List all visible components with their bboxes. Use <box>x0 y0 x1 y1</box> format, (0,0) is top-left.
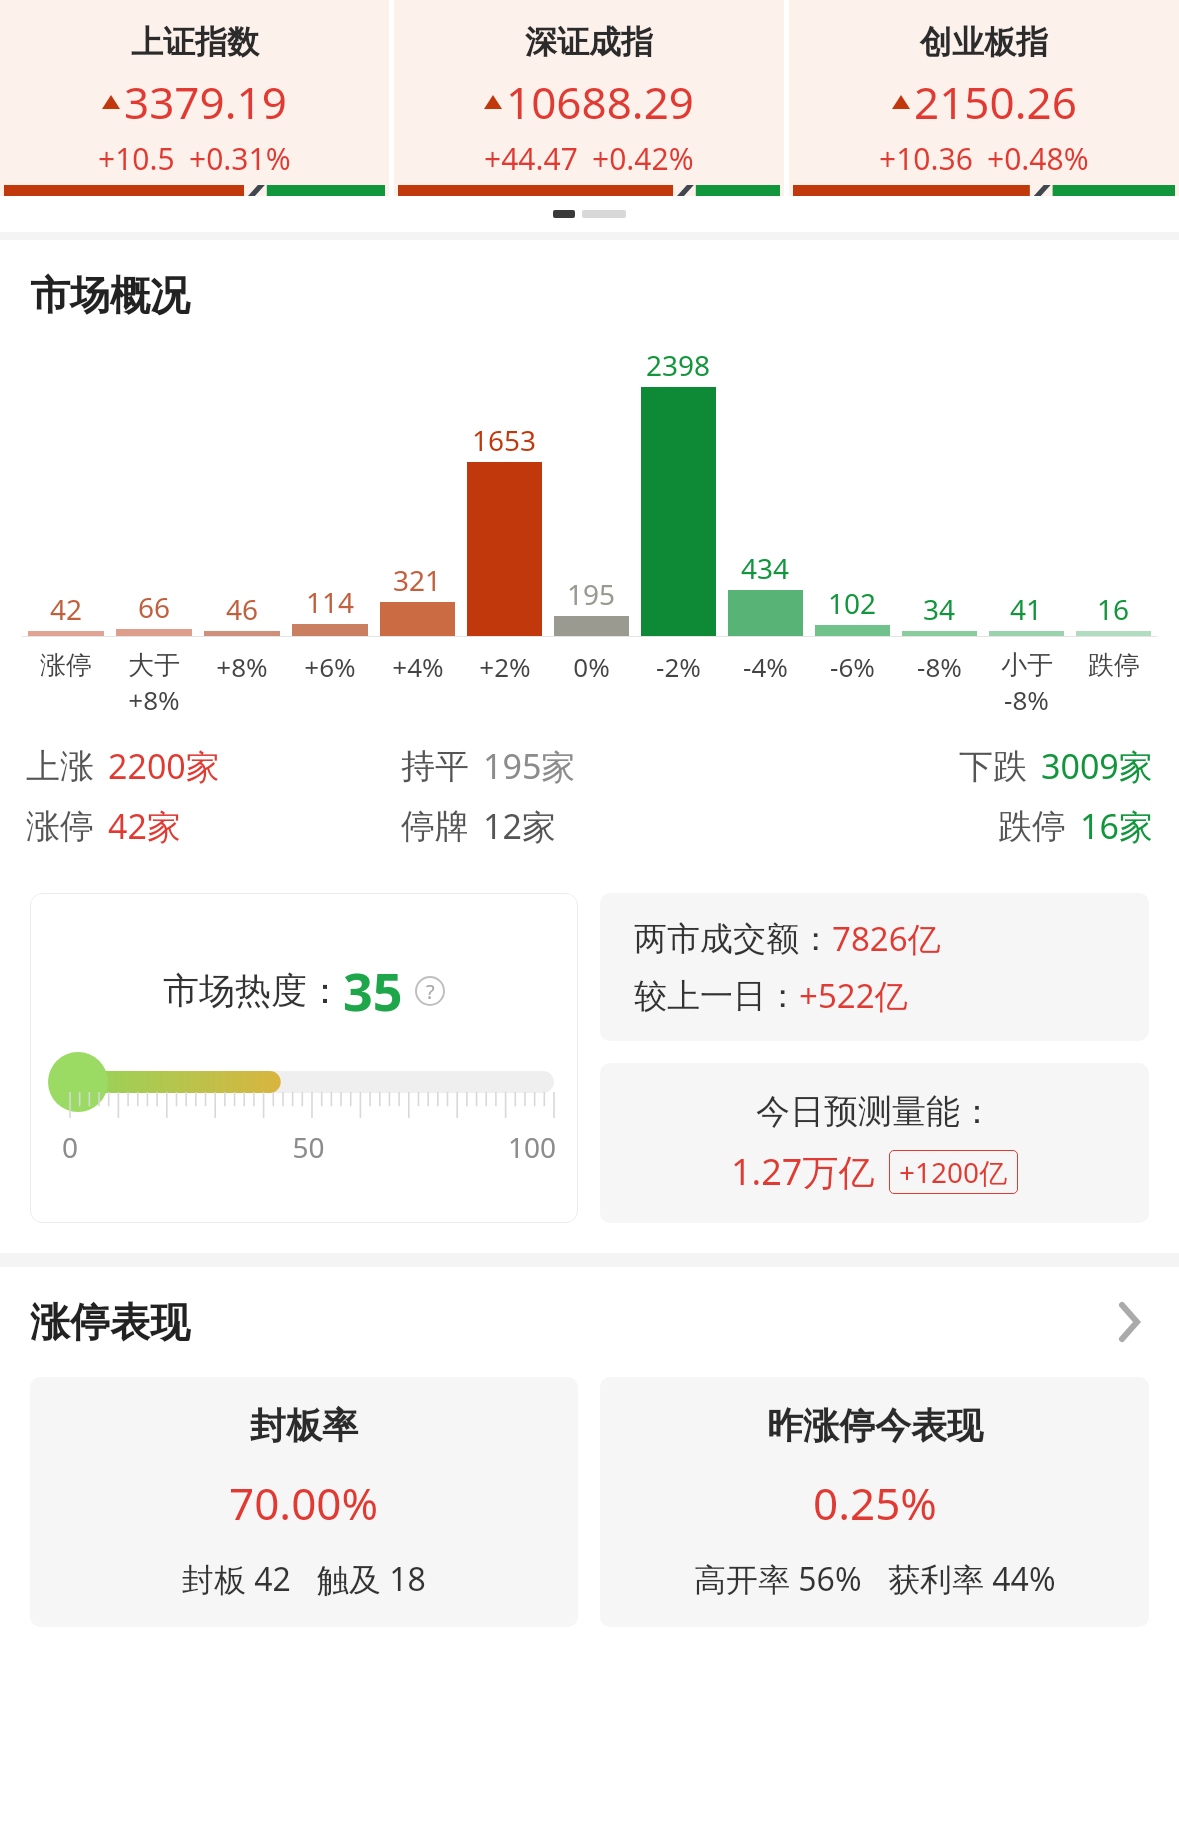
staticText: 50 <box>226 1128 391 1166</box>
staticText: 195家 <box>483 743 576 789</box>
staticText: 100 <box>391 1128 556 1166</box>
staticText: 触及 18 <box>317 1557 426 1601</box>
staticText: +8% <box>216 649 268 684</box>
staticText: 70.00% <box>229 1473 379 1533</box>
staticText: 上证指数 <box>131 22 259 62</box>
staticText: 7826亿 <box>832 916 941 961</box>
staticText: 两市成交额： <box>634 918 832 960</box>
staticText: +1200亿 <box>899 1153 1008 1191</box>
staticText: +0.31% <box>189 138 291 179</box>
staticText: -8% <box>1004 682 1049 717</box>
button[interactable]: 市场热度： <box>30 893 578 1223</box>
staticText: 1.27万亿 <box>731 1147 875 1196</box>
button[interactable]: 上证指数 <box>0 0 389 196</box>
staticText: +10.5 <box>98 138 175 179</box>
staticText: 2150.26 <box>914 72 1077 132</box>
staticText: 深证成指 <box>525 22 653 62</box>
staticText: ? <box>426 978 435 1005</box>
staticText: 下跌 <box>959 745 1027 788</box>
staticText: 42 <box>50 590 83 628</box>
button[interactable]: 帮助 <box>415 976 445 1006</box>
staticText: 获利率 44% <box>888 1557 1056 1601</box>
staticText: 封板率 <box>250 1403 358 1448</box>
staticText: 434 <box>741 549 790 587</box>
other: 更多 <box>1109 1302 1149 1342</box>
staticText: +0.42% <box>592 138 694 179</box>
staticText: 2200家 <box>108 743 220 789</box>
button[interactable]: 封板率 <box>30 1377 578 1627</box>
staticText: 持平 <box>401 745 469 788</box>
staticText: 35 <box>343 955 403 1026</box>
staticText: 昨涨停今表现 <box>767 1403 983 1448</box>
staticText: 小于 <box>1001 649 1053 682</box>
staticText: 46 <box>226 590 259 628</box>
staticText: 跌停 <box>1088 649 1140 682</box>
button[interactable]: 涨停表现 <box>30 1297 1149 1347</box>
staticText: -8% <box>917 649 962 684</box>
button[interactable]: 两市成交额： <box>600 893 1149 1041</box>
staticText: 1653 <box>472 421 537 459</box>
staticText: 上涨 <box>26 745 94 788</box>
staticText: 16 <box>1097 590 1130 628</box>
staticText: 66 <box>138 588 171 626</box>
staticText: 大于 <box>128 649 180 682</box>
staticText: 42家 <box>108 803 181 849</box>
button[interactable]: 今日预测量能： <box>600 1063 1149 1223</box>
staticText: 114 <box>306 583 355 621</box>
staticText: +0.48% <box>987 138 1089 179</box>
staticText: 涨停 <box>40 649 92 682</box>
staticText: 0% <box>573 649 610 684</box>
staticText: +522亿 <box>799 973 908 1018</box>
staticText: 创业板指 <box>920 22 1048 62</box>
staticText: +2% <box>479 649 531 684</box>
staticText: +8% <box>128 682 180 717</box>
staticText: +6% <box>304 649 356 684</box>
staticText: 跌停 <box>998 805 1066 848</box>
staticText: 41 <box>1010 590 1043 628</box>
staticText: 2398 <box>646 346 711 384</box>
staticText: 195 <box>567 575 616 613</box>
staticText: 321 <box>393 561 442 599</box>
staticText: 3009家 <box>1041 743 1153 789</box>
button[interactable]: 创业板指 <box>789 0 1179 196</box>
staticText: +44.47 <box>484 138 578 179</box>
staticText: 市场概况 <box>30 270 190 320</box>
staticText: 10688.29 <box>506 72 694 132</box>
staticText: 较上一日： <box>634 975 799 1017</box>
staticText: 0 <box>62 1128 226 1166</box>
staticText: 3379.19 <box>124 72 287 132</box>
staticText: -2% <box>656 649 701 684</box>
staticText: 停牌 <box>401 805 469 848</box>
staticText: 102 <box>828 584 877 622</box>
staticText: 34 <box>923 590 956 628</box>
staticText: 市场热度： <box>163 968 343 1013</box>
staticText: 0.25% <box>813 1473 937 1533</box>
staticText: 16家 <box>1080 803 1153 849</box>
staticText: 涨停 <box>26 805 94 848</box>
staticText: 今日预测量能： <box>756 1090 994 1133</box>
staticText: +10.36 <box>879 138 973 179</box>
staticText: -4% <box>743 649 788 684</box>
staticText: 高开率 56% <box>694 1557 862 1601</box>
staticText: 涨停表现 <box>30 1297 1109 1347</box>
staticText: 12家 <box>483 803 556 849</box>
button[interactable]: 昨涨停今表现 <box>600 1377 1149 1627</box>
staticText: 封板 42 <box>182 1557 291 1601</box>
button[interactable]: 深证成指 <box>394 0 784 196</box>
staticText: +4% <box>392 649 444 684</box>
staticText: -6% <box>830 649 875 684</box>
